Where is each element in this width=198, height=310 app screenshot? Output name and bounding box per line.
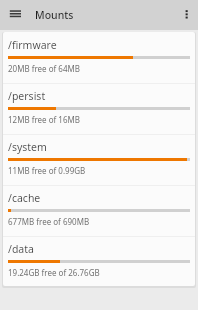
button[interactable]: /data xyxy=(3,236,195,286)
button[interactable]: /cache xyxy=(3,185,195,236)
staticText: 677MB free of 690MB xyxy=(8,216,90,227)
staticText: 19.24GB free of 26.76GB xyxy=(8,267,100,278)
staticText: 12MB free of 16MB xyxy=(8,114,80,125)
staticText: /persist xyxy=(8,89,46,103)
staticText: /data xyxy=(8,242,34,256)
staticText: /system xyxy=(8,140,47,154)
staticText: 11MB free of 0.99GB xyxy=(8,165,86,176)
button[interactable]: /system xyxy=(3,134,195,185)
button[interactable]: More options xyxy=(172,0,196,30)
staticText: /firmware xyxy=(8,38,57,52)
button[interactable]: /persist xyxy=(3,83,195,134)
staticText: 20MB free of 64MB xyxy=(8,63,80,74)
button[interactable]: Open navigation drawer xyxy=(4,0,28,30)
button[interactable]: /firmware xyxy=(3,32,195,83)
staticText: /cache xyxy=(8,191,41,205)
staticText: Mounts xyxy=(35,8,74,22)
